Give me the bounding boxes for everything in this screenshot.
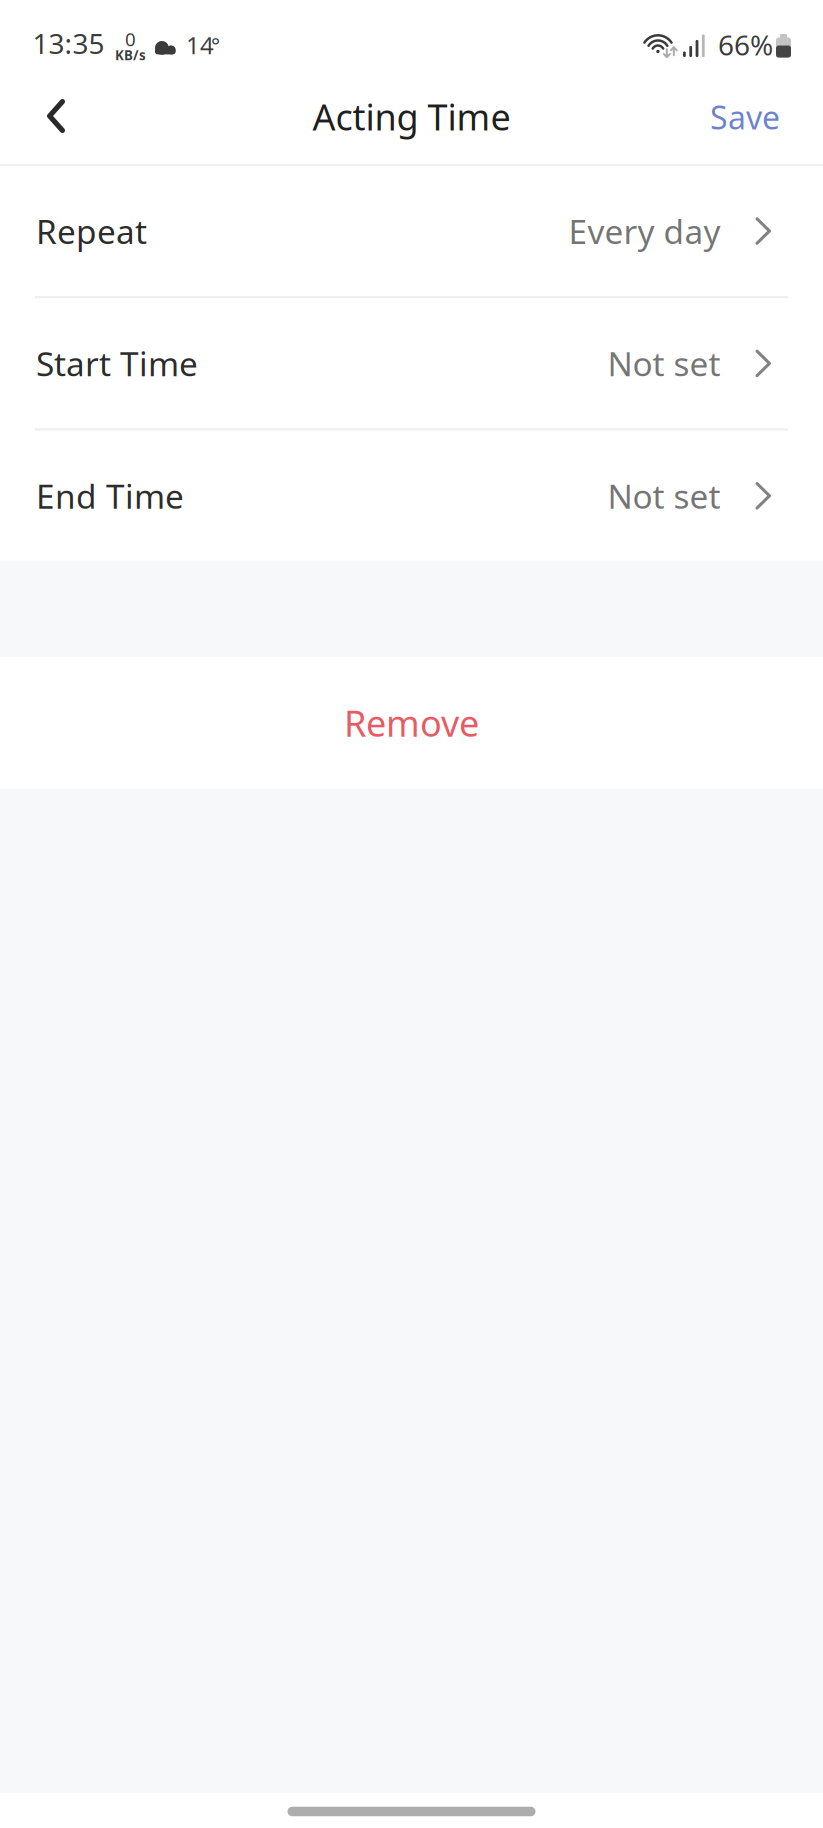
staticText: Remove bbox=[344, 699, 479, 747]
button[interactable]: End Time bbox=[0, 431, 823, 561]
staticText: 14 bbox=[186, 29, 214, 61]
staticText: Not set bbox=[607, 341, 720, 386]
staticText: Start Time bbox=[36, 341, 198, 386]
staticText: ° bbox=[211, 31, 220, 59]
button[interactable]: Repeat bbox=[0, 166, 823, 296]
staticText: 0 bbox=[125, 26, 136, 51]
staticText: 13:35 bbox=[32, 24, 104, 62]
staticText: Save bbox=[710, 96, 780, 138]
staticText: Every day bbox=[568, 209, 720, 253]
staticText: End Time bbox=[36, 474, 184, 518]
staticText: Repeat bbox=[36, 209, 147, 253]
button[interactable]: Save bbox=[690, 88, 800, 158]
button[interactable]: Start Time bbox=[0, 298, 823, 428]
staticText: Not set bbox=[607, 474, 720, 518]
button[interactable]: Remove bbox=[0, 657, 823, 789]
staticText: Acting Time bbox=[312, 93, 510, 140]
staticText: KB/s bbox=[115, 46, 146, 64]
button[interactable]: Back bbox=[25, 88, 87, 158]
staticText: 66% bbox=[718, 26, 773, 63]
